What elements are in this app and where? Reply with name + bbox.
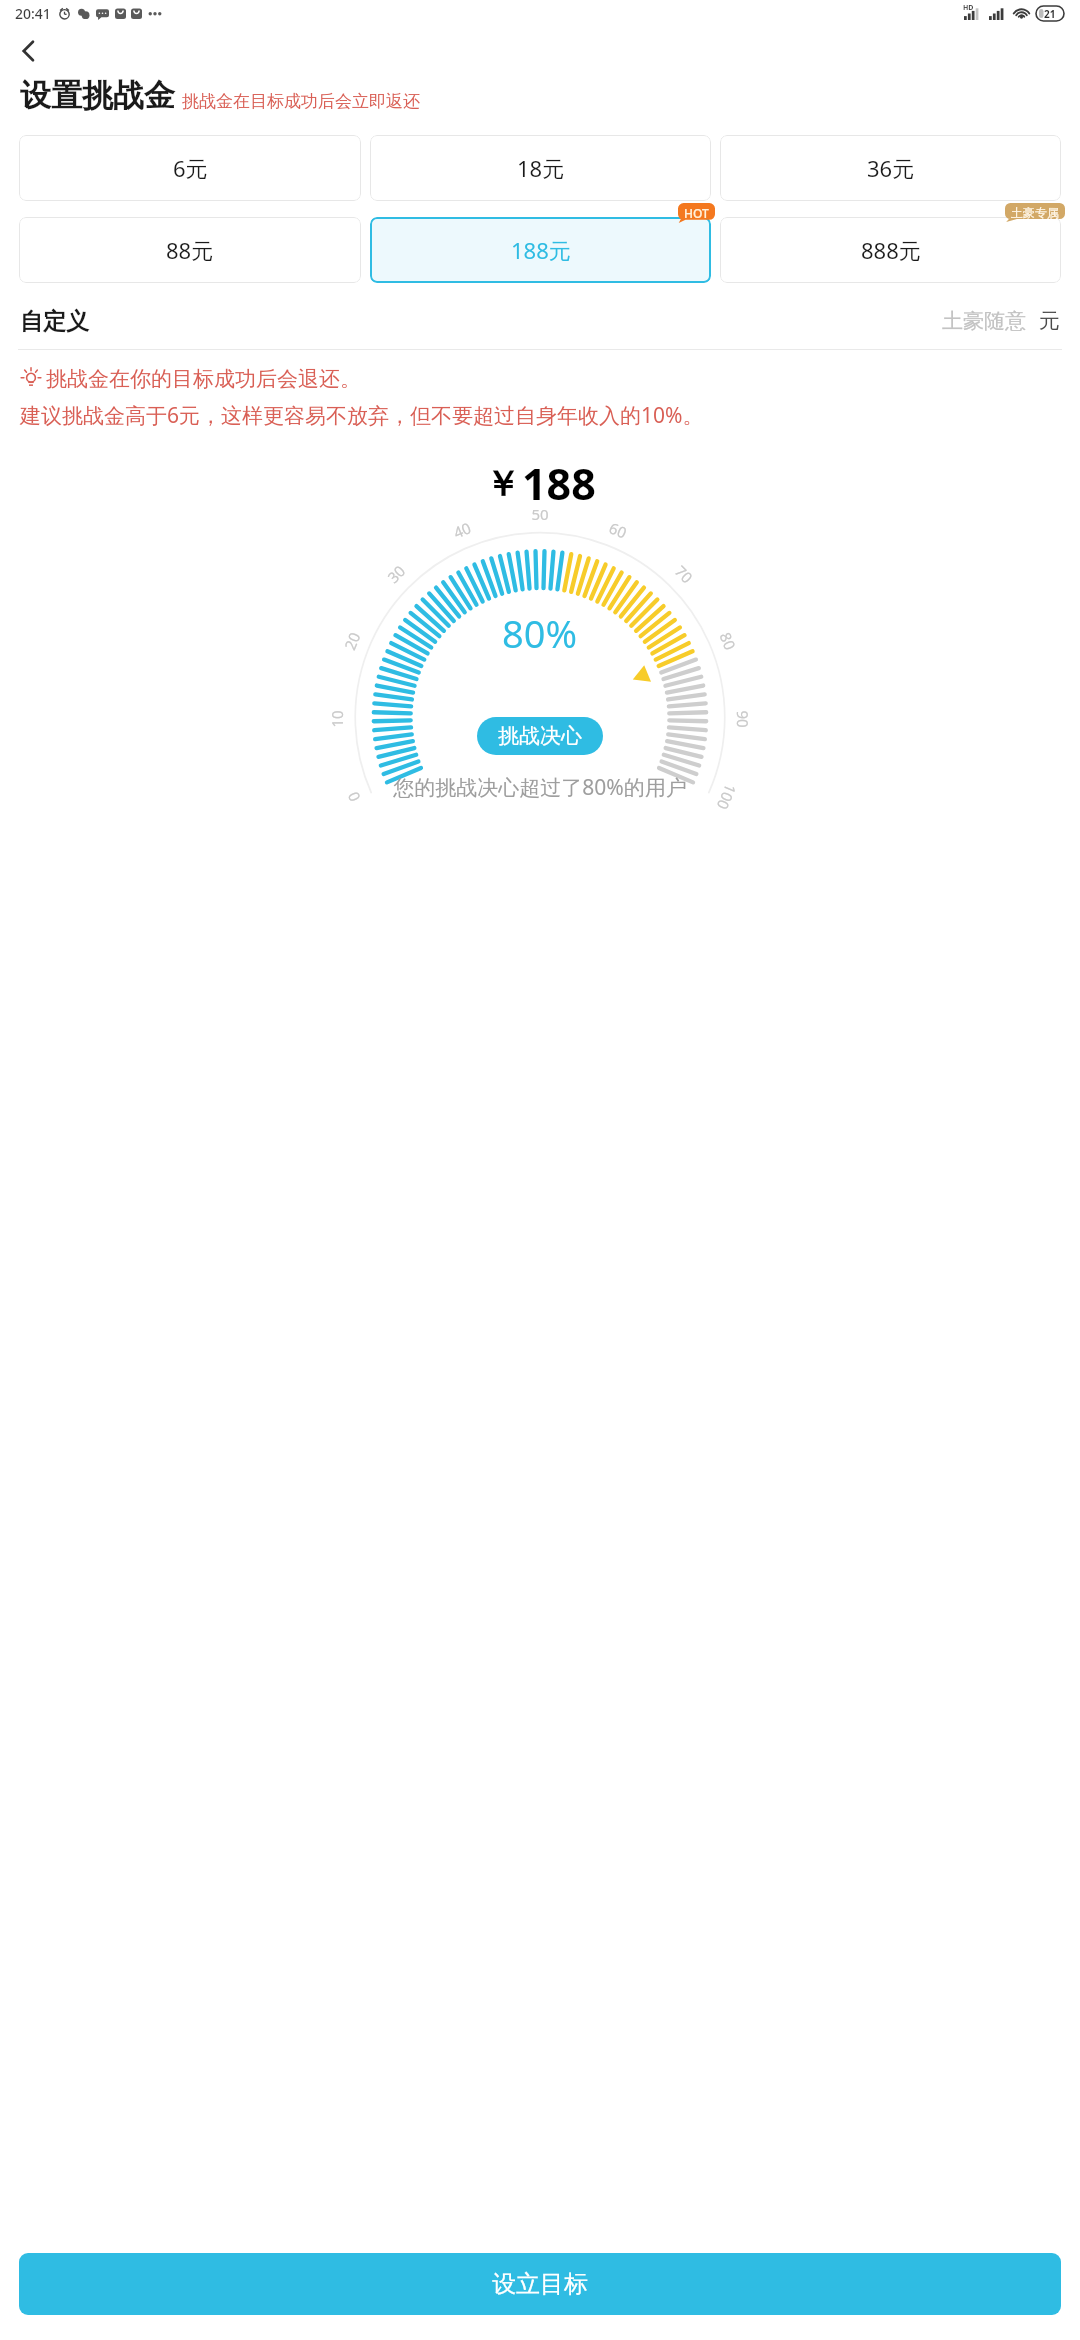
staticText: HOT xyxy=(684,205,709,221)
button[interactable]: 88元 xyxy=(19,217,361,283)
button[interactable]: 188元 xyxy=(370,217,711,283)
staticText: 30 xyxy=(383,561,409,587)
button[interactable]: 土豪随意 xyxy=(942,308,1026,334)
staticText: 100 xyxy=(713,781,741,813)
staticText: 土豪随意 xyxy=(942,308,1026,334)
staticText: 18元 xyxy=(517,153,565,183)
staticText: 40 xyxy=(450,517,474,543)
staticText: 188 xyxy=(522,454,596,513)
staticText: 挑战决心 xyxy=(498,723,582,749)
button[interactable]: 设立目标 xyxy=(19,2253,1061,2315)
staticText: 888元 xyxy=(861,235,921,265)
staticText: HD xyxy=(963,3,974,13)
button[interactable]: 挑战决心 xyxy=(477,717,603,755)
staticText: 70 xyxy=(671,561,697,587)
staticText: 设立目标 xyxy=(492,2269,588,2299)
staticText: 21 xyxy=(1044,7,1056,21)
staticText: 80% xyxy=(502,607,578,659)
staticText: 80 xyxy=(715,629,741,653)
staticText: 60 xyxy=(606,517,630,543)
button[interactable]: 6元 xyxy=(19,135,361,201)
staticText: ￥ xyxy=(485,462,520,506)
staticText: 挑战金在目标成功后会立即返还 xyxy=(182,91,420,112)
button[interactable]: 888元 xyxy=(720,217,1061,283)
staticText: 自定义 xyxy=(20,307,89,336)
staticText: 0 xyxy=(342,789,364,805)
staticText: 建议挑战金高于6元，这样更容易不放弃，但不要超过自身年收入的10%。 xyxy=(20,401,704,430)
staticText: 设置挑战金 xyxy=(20,76,175,115)
button[interactable]: 18元 xyxy=(370,135,711,201)
staticText: 10 xyxy=(327,710,347,728)
staticText: 88元 xyxy=(166,235,214,265)
staticText: 元 xyxy=(1039,308,1060,334)
button[interactable]: Back xyxy=(6,28,52,74)
staticText: 您的挑战决心超过了80%的用户 xyxy=(0,773,1080,802)
staticText: 50 xyxy=(531,504,549,524)
staticText: 6元 xyxy=(173,153,208,183)
button[interactable]: 36元 xyxy=(720,135,1061,201)
staticText: 188元 xyxy=(511,235,571,265)
staticText: 90 xyxy=(733,710,753,728)
staticText: 20:41 xyxy=(15,4,51,23)
staticText: 土豪专属 xyxy=(1011,205,1059,220)
staticText: 36元 xyxy=(867,153,915,183)
staticText: 挑战金在你的目标成功后会退还。 xyxy=(46,366,361,392)
staticText: 20 xyxy=(339,629,365,653)
